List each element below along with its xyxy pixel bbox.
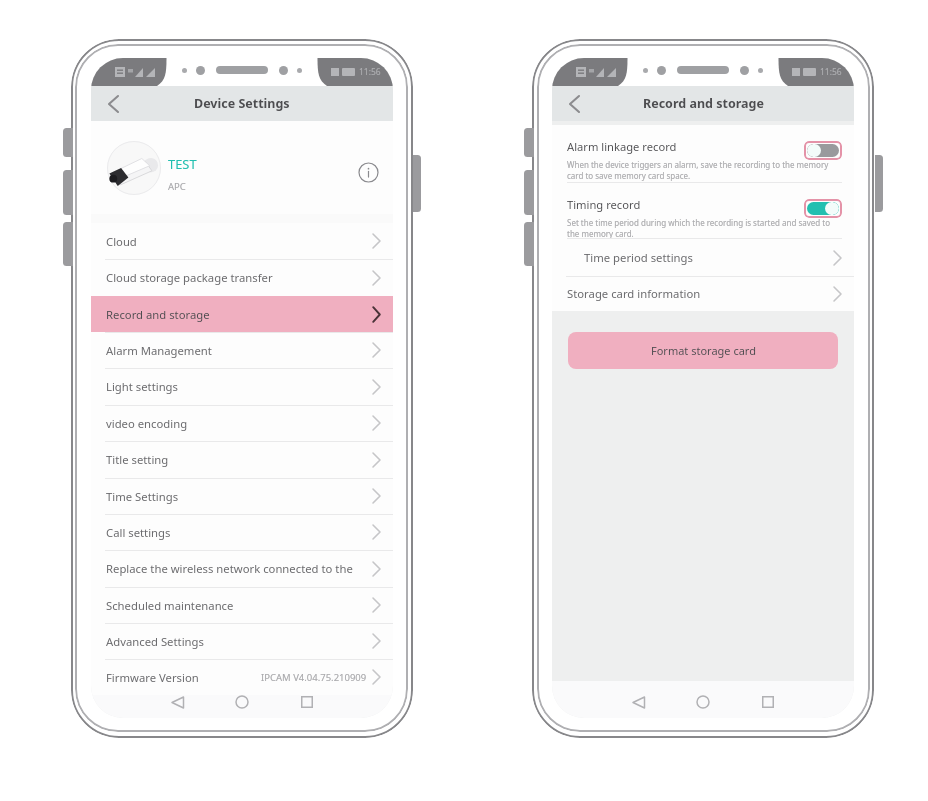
button[interactable]: Recent apps [754,688,782,716]
button[interactable]: Home [228,688,256,716]
button[interactable]: Scheduled maintenance [91,587,393,623]
staticText: APC [168,180,186,193]
button[interactable]: Back [164,688,192,716]
button[interactable]: Cloud storage package transfer [91,259,393,296]
staticText: Call settings [106,525,171,540]
button[interactable]: Turn off [804,199,842,218]
staticText: Alarm Management [106,343,212,358]
button[interactable]: Cloud [91,223,393,259]
staticText: Cloud storage package transfer [106,270,273,285]
staticText: Firmware Version [106,670,199,685]
button[interactable]: Turn on [804,141,842,160]
staticText: Scheduled maintenance [106,598,234,613]
button[interactable]: Title setting [91,441,393,478]
staticText: 11:56 [820,66,842,78]
button[interactable]: Replace the wireless network connected t… [91,550,393,587]
button[interactable]: Format storage card [568,332,838,369]
staticText: Record and storage [643,95,764,112]
button[interactable]: Recent apps [293,688,321,716]
button[interactable]: Device info [355,159,381,185]
staticText: Replace the wireless network connected t… [106,561,353,576]
staticText: Set the time period during which the rec… [567,217,842,239]
staticText: Timing record [567,197,641,212]
staticText: TEST [168,155,197,173]
staticText: Time Settings [106,489,179,504]
button[interactable]: Time Settings [91,478,393,514]
staticText: Cloud [106,234,137,249]
staticText: Format storage card [651,343,756,358]
button[interactable]: Alarm Management [91,332,393,368]
staticText: Light settings [106,379,178,394]
staticText: Storage card information [567,286,701,301]
staticText: Time period settings [584,250,693,265]
staticText: Advanced Settings [106,634,204,649]
button[interactable]: Storage card information [552,276,854,311]
staticText: IPCAM V4.04.75.210909 [261,671,367,684]
button[interactable]: video encoding [91,405,393,441]
staticText: 11:56 [359,66,381,78]
button[interactable]: Light settings [91,368,393,405]
button[interactable]: Back [101,92,125,116]
staticText: Alarm linkage record [567,139,677,154]
button[interactable]: Call settings [91,514,393,550]
button[interactable]: Firmware Version [91,659,393,695]
button[interactable]: Home [689,688,717,716]
button[interactable]: Record and storage [91,296,393,332]
staticText: video encoding [106,416,188,431]
button[interactable]: Advanced Settings [91,623,393,659]
staticText: Device Settings [194,95,290,112]
button[interactable]: Back [625,688,653,716]
staticText: Title setting [106,452,169,467]
staticText: Record and storage [106,307,210,322]
staticText: When the device triggers an alarm, save … [567,159,842,181]
button[interactable]: Back [562,92,586,116]
button[interactable]: Time period settings [552,239,854,276]
